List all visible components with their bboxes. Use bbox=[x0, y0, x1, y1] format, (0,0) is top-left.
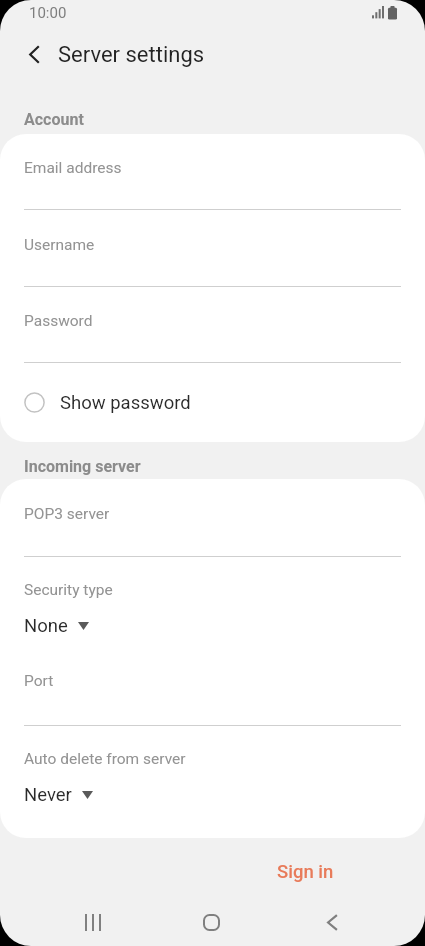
staticText: 10:00 bbox=[29, 4, 67, 22]
button[interactable]: Password bbox=[0, 306, 425, 363]
staticText: Sign in bbox=[277, 861, 334, 883]
staticText: Auto delete from server bbox=[24, 750, 186, 768]
staticText: Show password bbox=[60, 392, 191, 414]
staticText: Server settings bbox=[58, 42, 205, 68]
button[interactable]: Home bbox=[187, 898, 236, 946]
staticText: Incoming server bbox=[24, 457, 141, 476]
staticText: Password bbox=[24, 312, 93, 330]
staticText: Port bbox=[24, 672, 54, 690]
button[interactable]: Auto delete from server bbox=[0, 744, 425, 834]
button[interactable]: Sign in bbox=[255, 853, 356, 891]
button[interactable]: Back bbox=[308, 898, 357, 946]
staticText: Email address bbox=[24, 159, 122, 177]
staticText: Account bbox=[24, 110, 84, 129]
staticText: None bbox=[24, 615, 68, 637]
button[interactable]: Security type bbox=[0, 575, 425, 660]
staticText: Security type bbox=[24, 581, 113, 599]
staticText: Never bbox=[24, 784, 72, 806]
staticText: POP3 server bbox=[24, 505, 110, 523]
button[interactable]: Port bbox=[0, 666, 425, 726]
staticText: Username bbox=[24, 236, 95, 254]
button[interactable]: Show password bbox=[0, 363, 425, 442]
button[interactable]: Navigate up bbox=[10, 30, 59, 79]
button[interactable]: Recent apps bbox=[68, 898, 117, 946]
button[interactable]: Username bbox=[0, 230, 425, 287]
button[interactable]: POP3 server bbox=[0, 499, 425, 557]
button[interactable]: Email address bbox=[0, 153, 425, 210]
